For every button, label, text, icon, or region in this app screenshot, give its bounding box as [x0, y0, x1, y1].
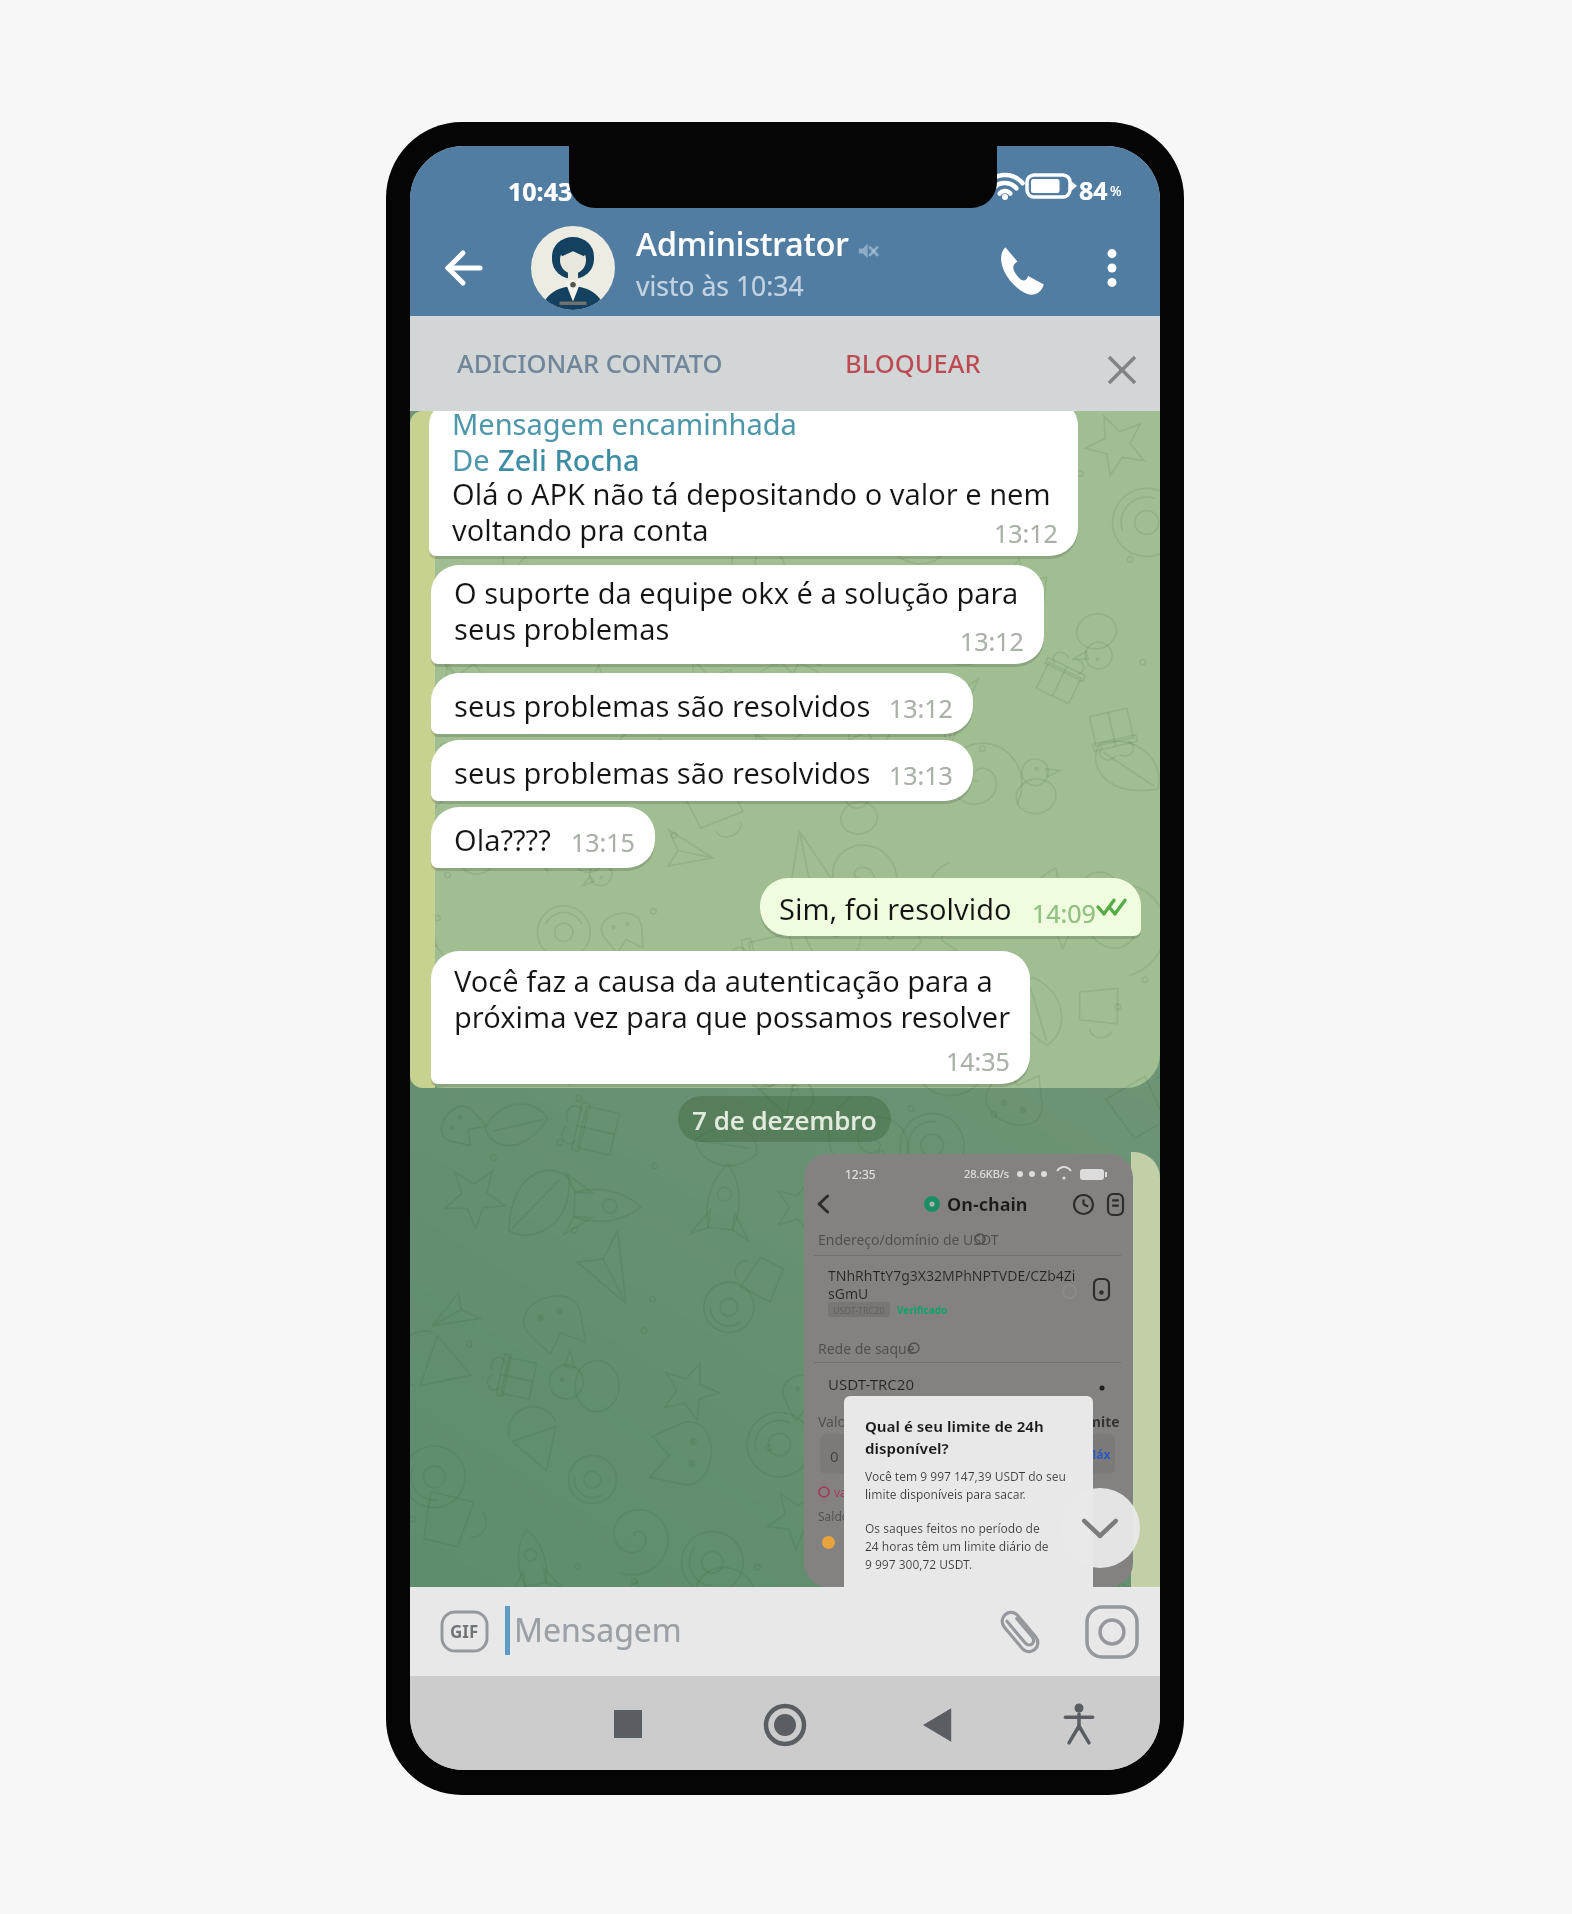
staticText: Valor	[818, 1412, 852, 1431]
button[interactable]: Ola????	[431, 807, 655, 868]
staticText: voltando pra conta	[452, 510, 709, 549]
staticText: Você tem 9 997 147,39 USDT do seu	[865, 1468, 1066, 1484]
staticText: %	[1110, 181, 1122, 200]
staticText: seus problemas são resolvidos	[454, 753, 871, 792]
staticText: disponível?	[865, 1438, 949, 1458]
staticText: 14:35	[946, 1044, 1010, 1078]
staticText: GIF	[450, 1620, 479, 1643]
staticText: 28.6KB/s	[964, 1166, 1010, 1181]
button[interactable]: Sim, foi resolvido	[760, 878, 1141, 936]
button[interactable]: Close	[1091, 316, 1153, 411]
button[interactable]: seus problemas são resolvidos	[431, 740, 973, 801]
button[interactable]: GIF	[441, 1611, 488, 1652]
staticText: 24 horas têm um limite diário de	[865, 1538, 1049, 1554]
button[interactable]: More options	[1082, 238, 1142, 298]
staticText: 0	[830, 1446, 839, 1466]
button[interactable]: 7 de dezembro	[678, 1096, 891, 1142]
button[interactable]: Camera	[1086, 1606, 1138, 1658]
staticText: Você faz a causa da autenticação para a	[454, 961, 993, 1000]
button[interactable]: BLOQUEAR	[818, 316, 1008, 411]
staticText: De	[452, 440, 498, 479]
staticText: seus problemas	[454, 609, 670, 648]
staticText: visto às 10:34	[636, 268, 804, 304]
staticText: Verificado	[897, 1303, 948, 1317]
button[interactable]: ADICIONAR CONTATO	[434, 316, 746, 411]
button[interactable]: Attach	[994, 1606, 1046, 1658]
staticText: valor	[834, 1484, 863, 1500]
staticText: 10:43	[508, 174, 573, 208]
button[interactable]: Profile photo	[531, 226, 615, 310]
button[interactable]: Call	[991, 240, 1051, 300]
staticText: 13:12	[994, 516, 1058, 550]
staticText: Saldo	[818, 1508, 850, 1524]
staticText: limite	[1079, 1412, 1120, 1431]
staticText: Mensagem	[514, 1608, 682, 1652]
staticText: Ola????	[454, 820, 551, 859]
staticText: 13:12	[960, 624, 1024, 658]
staticText: ADICIONAR CONTATO	[457, 346, 723, 381]
staticText: próxima vez para que possamos resolver	[454, 997, 1011, 1036]
staticText: BLOQUEAR	[845, 346, 981, 381]
staticText: USDT-TRC20	[833, 1304, 885, 1316]
staticText: 9 997 300,72 USDT.	[865, 1556, 973, 1572]
staticText: 13:13	[889, 758, 953, 792]
button[interactable]: O suporte da equipe okx é a solução para	[431, 565, 1044, 664]
button[interactable]: Mensagem encaminhada	[429, 398, 1078, 556]
button[interactable]: seus problemas são resolvidos	[431, 673, 973, 734]
staticText: 84	[1079, 173, 1108, 207]
staticText: 14:09	[1032, 896, 1096, 930]
button[interactable]: Recent apps	[612, 1708, 644, 1740]
button[interactable]: Back	[432, 236, 494, 298]
staticText: seus problemas são resolvidos	[454, 686, 871, 725]
staticText: 13:12	[889, 691, 953, 725]
staticText: Endereço/domínio de USDT	[818, 1230, 999, 1249]
staticText: 12:35	[845, 1166, 876, 1182]
button[interactable]: Home	[764, 1704, 806, 1746]
staticText: sGmU	[828, 1284, 869, 1303]
button[interactable]: Back	[920, 1706, 958, 1744]
button[interactable]: Scroll to bottom	[1060, 1488, 1140, 1568]
staticText: Olá o APK não tá depositando o valor e n…	[452, 474, 1051, 513]
staticText: Qual é seu limite de 24h	[865, 1416, 1044, 1436]
staticText: 13:15	[571, 825, 635, 859]
staticText: Mensagem encaminhada	[452, 404, 797, 443]
staticText: Os saques feitos no período de	[865, 1520, 1040, 1536]
staticText: limite disponíveis para sacar.	[865, 1486, 1026, 1502]
staticText: Máx	[1085, 1446, 1111, 1462]
button[interactable]: Photo	[804, 1154, 1133, 1587]
staticText: O suporte da equipe okx é a solução para	[454, 573, 1019, 612]
staticText: USDT-TRC20	[828, 1374, 914, 1394]
staticText: Administrator	[636, 222, 849, 266]
staticText: 7 de dezembro	[692, 1102, 877, 1137]
staticText: Sim, foi resolvido	[779, 889, 1012, 928]
staticText: On-chain	[947, 1192, 1028, 1217]
button[interactable]: Accessibility	[1059, 1704, 1099, 1744]
button[interactable]: Você faz a causa da autenticação para a	[431, 951, 1030, 1084]
staticText: TNhRhTtY7g3X32MPhNPTVDE/CZb4Zi	[828, 1266, 1076, 1285]
staticText: Rede de saque	[818, 1339, 915, 1358]
staticText: Zeli Rocha	[498, 440, 640, 479]
